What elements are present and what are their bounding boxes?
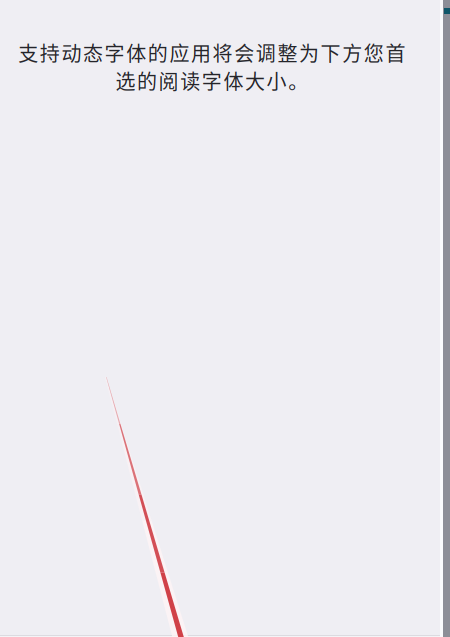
staticText: 支持动态字体的应用将会调整为下方您首选的阅读字体大小。 — [17, 38, 405, 95]
